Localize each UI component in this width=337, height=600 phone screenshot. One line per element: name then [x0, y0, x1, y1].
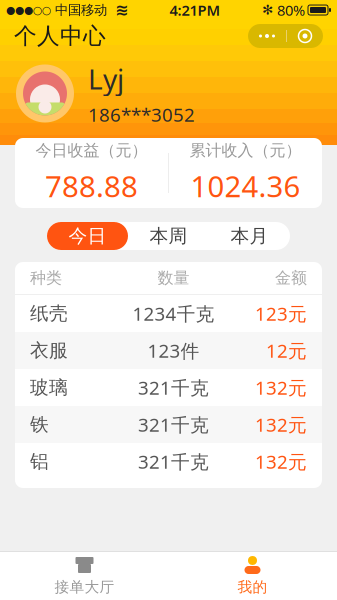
button[interactable]: 本月 [209, 222, 290, 250]
button[interactable]: 衣服 [15, 332, 322, 369]
staticText: 321千克 [138, 449, 209, 474]
staticText: 金额 [275, 268, 307, 288]
staticText: 玻璃 [30, 376, 68, 399]
staticText: ≋ [115, 1, 128, 19]
staticText: 种类 [30, 268, 62, 288]
button[interactable]: 我的 [168, 552, 336, 600]
staticText: 本月 [230, 224, 268, 247]
staticText: 我的 [237, 578, 267, 596]
staticText: 1234千克 [132, 301, 214, 326]
staticText: 数量 [157, 268, 189, 288]
staticText: 1024.36 [190, 166, 300, 205]
staticText: 788.88 [45, 166, 138, 205]
staticText: 132元 [255, 449, 307, 474]
staticText: 132元 [255, 375, 307, 400]
button[interactable]: 纸壳 [15, 295, 322, 332]
staticText: 123元 [255, 301, 307, 326]
staticText: 中国移动 [51, 2, 115, 18]
staticText: 80% [273, 0, 305, 20]
staticText: 12元 [266, 338, 307, 363]
staticText: 个人中心 [14, 22, 106, 50]
staticText: Lyj [88, 60, 124, 97]
staticText: 接单大厅 [54, 578, 114, 596]
staticText: 今日收益（元） [35, 141, 147, 160]
staticText: 321千克 [138, 375, 209, 400]
staticText: 本周 [149, 224, 187, 247]
button[interactable]: 本周 [128, 222, 209, 250]
staticText: ✻ [262, 2, 273, 17]
staticText: 铝 [30, 450, 49, 473]
staticText: 186***3052 [88, 102, 195, 127]
button[interactable]: 玻璃 [15, 369, 322, 406]
button[interactable]: 铁 [15, 406, 322, 443]
button[interactable]: More [248, 24, 286, 48]
staticText: 纸壳 [30, 302, 68, 325]
staticText: 132元 [255, 412, 307, 437]
staticText: 今日 [68, 224, 106, 247]
button[interactable]: 铝 [15, 443, 322, 480]
staticText: 4:21PM [169, 0, 220, 20]
staticText: 123件 [147, 338, 199, 363]
staticText: 铁 [30, 413, 49, 436]
staticText: 累计收入（元） [189, 141, 301, 160]
staticText: ●●●○○ [6, 4, 51, 16]
button[interactable]: Close [287, 24, 323, 48]
staticText: 衣服 [30, 339, 68, 362]
button[interactable]: 接单大厅 [0, 552, 168, 600]
staticText: 321千克 [138, 412, 209, 437]
button[interactable]: 今日 [47, 222, 128, 250]
